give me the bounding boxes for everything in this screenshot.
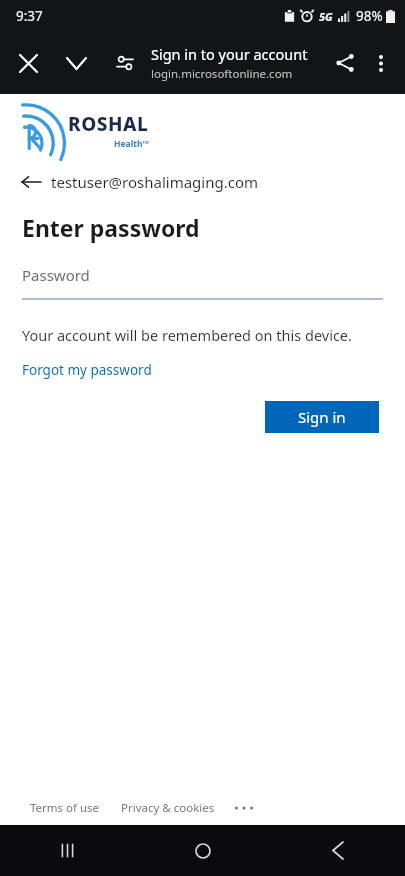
button[interactable]: Back xyxy=(270,825,405,876)
button[interactable]: testuser@roshalimaging.com xyxy=(22,172,259,192)
staticText: login.microsoftonline.com xyxy=(151,66,293,82)
button[interactable]: Recent apps xyxy=(0,825,135,876)
button[interactable]: More options xyxy=(359,41,403,85)
staticText: 5G xyxy=(319,9,333,24)
staticText: Privacy & cookies xyxy=(121,800,215,816)
staticText: testuser@roshalimaging.com xyxy=(51,172,259,192)
staticText: Health™ xyxy=(114,138,149,150)
staticText: 98% xyxy=(356,7,383,25)
button[interactable]: Sign in xyxy=(265,401,379,433)
staticText: Sign in xyxy=(298,407,346,427)
staticText: 9:37 xyxy=(16,7,43,25)
button[interactable]: Forgot my password xyxy=(22,361,152,379)
staticText: Password xyxy=(22,265,90,285)
staticText: Enter password xyxy=(22,212,200,243)
staticText: Sign in to your account xyxy=(151,44,308,64)
staticText: ROSHAL xyxy=(68,111,149,137)
button[interactable]: Home xyxy=(135,825,270,876)
button[interactable]: More xyxy=(231,799,257,817)
button[interactable]: Collapse xyxy=(54,41,98,85)
staticText: Terms of use xyxy=(30,800,100,816)
staticText: Forgot my password xyxy=(22,361,152,379)
button[interactable]: Privacy & cookies xyxy=(121,800,215,816)
staticText: Your account will be remembered on this … xyxy=(22,325,352,345)
button[interactable]: Share xyxy=(323,41,367,85)
button[interactable]: Password xyxy=(22,265,383,300)
button[interactable]: Terms of use xyxy=(30,800,100,816)
button[interactable]: Page info xyxy=(105,43,145,83)
button[interactable]: Close xyxy=(6,41,50,85)
button[interactable]: Sign in to your account xyxy=(151,44,316,82)
